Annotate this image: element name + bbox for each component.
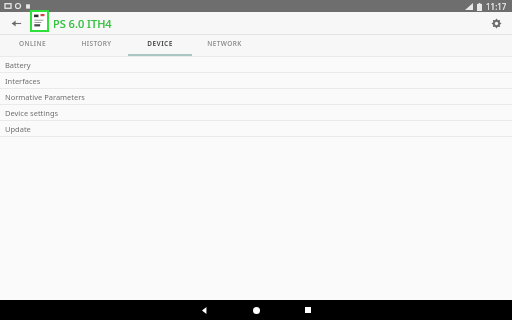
staticText: Interfaces (5, 76, 41, 86)
button[interactable]: Update (0, 121, 512, 136)
staticText: Device settings (5, 108, 59, 118)
staticText: ONLINE (19, 39, 46, 48)
button[interactable]: Battery (0, 57, 512, 72)
staticText: DEVICE (147, 39, 173, 48)
staticText: Normative Parameters (5, 92, 85, 102)
button[interactable]: DEVICE (128, 35, 192, 56)
staticText: PS 6.0 ITH4 (53, 16, 112, 31)
button[interactable]: Interfaces (0, 73, 512, 88)
button[interactable]: Back (180, 300, 228, 320)
button[interactable]: HISTORY (64, 35, 128, 56)
button[interactable]: Recent apps (284, 300, 332, 320)
button[interactable]: NETWORK (192, 35, 256, 56)
button[interactable]: Device settings (0, 105, 512, 120)
button[interactable]: Normative Parameters (0, 89, 512, 104)
button[interactable]: ONLINE (0, 35, 64, 56)
button[interactable]: Settings (486, 13, 506, 33)
staticText: Update (5, 124, 31, 134)
button[interactable]: Back (6, 13, 26, 33)
staticText: HISTORY (81, 39, 112, 48)
staticText: Battery (5, 60, 31, 70)
staticText: 11:17 (486, 1, 507, 12)
button[interactable]: Home (232, 300, 280, 320)
staticText: NETWORK (207, 39, 242, 48)
button[interactable]: PS 6.0 ITH4 (30, 12, 112, 34)
